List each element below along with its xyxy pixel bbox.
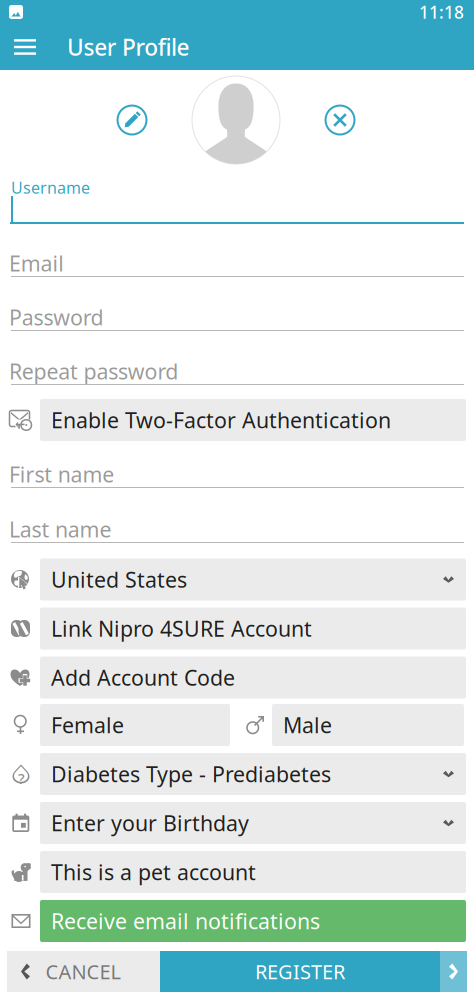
staticText: Receive email notifications [51,907,320,935]
button[interactable]: Link Nipro 4SURE Account [0,607,474,649]
button[interactable]: Enable Two-Factor Authentication [0,399,474,441]
staticText: Enter your Birthday [51,809,249,837]
button[interactable]: CANCEL [7,951,160,992]
staticText: Password [9,303,104,331]
button[interactable]: United States [0,558,474,600]
button[interactable]: Edit photo [114,102,150,138]
button[interactable]: Add Account Code [0,656,474,698]
button[interactable]: Remove photo [322,102,358,138]
button[interactable]: Menu [2,24,48,70]
staticText: United States [51,565,187,594]
staticText: ? [18,768,25,788]
staticText: Add Account Code [51,663,235,692]
staticText: Male [283,711,332,739]
button[interactable]: Enter your Birthday [0,802,474,844]
button[interactable]: Receive email notifications [0,900,474,942]
staticText: Email [9,249,64,277]
button[interactable]: REGISTER [160,951,440,992]
button[interactable]: This is a pet account [0,851,474,893]
staticText: Username [11,177,90,198]
staticText: First name [9,460,114,488]
staticText: User Profile [67,32,190,62]
staticText: This is a pet account [51,858,256,886]
staticText: REGISTER [255,958,345,985]
button[interactable]: Male [238,704,474,746]
button[interactable]: Next [440,951,467,992]
button[interactable]: Diabetes Type - Prediabetes [0,753,474,795]
staticText: Female [51,711,124,739]
staticText: Last name [9,515,111,543]
staticText: Diabetes Type - Prediabetes [51,760,331,788]
staticText: Link Nipro 4SURE Account [51,614,312,643]
staticText: 11:18 [419,0,464,23]
staticText: Repeat password [9,357,178,385]
staticText: Enable Two-Factor Authentication [51,406,391,434]
staticText: CANCEL [45,958,120,985]
button[interactable]: Female [0,704,230,746]
